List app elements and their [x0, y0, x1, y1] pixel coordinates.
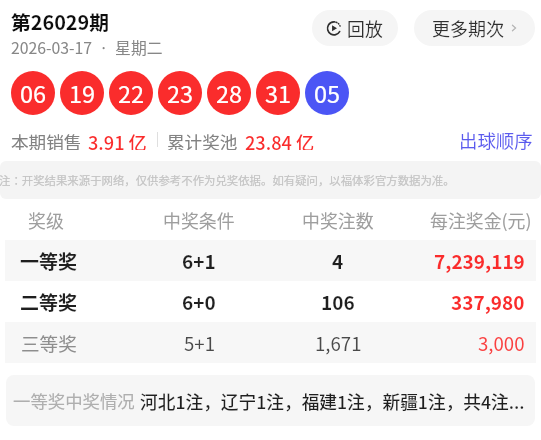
staticText: 7,239,119	[434, 247, 525, 275]
staticText: 奖级	[28, 207, 64, 233]
button[interactable]: 更多期次	[414, 10, 535, 46]
staticText: 每注奖金(元)	[430, 207, 532, 233]
staticText: 06	[20, 76, 47, 110]
staticText: 三等奖	[21, 329, 77, 356]
staticText: 本期销售	[11, 129, 82, 150]
staticText: 河北1注，辽宁1注，福建1注，新疆1注，共4注...	[140, 388, 525, 414]
staticText: 5+1	[184, 329, 215, 356]
staticText: 累计奖池	[167, 129, 238, 150]
staticText: 出球顺序	[459, 127, 533, 154]
staticText: 一等奖中奖情况	[13, 388, 135, 413]
staticText: 回放	[347, 15, 383, 41]
button[interactable]: 一等奖中奖情况	[6, 375, 535, 426]
staticText: 中奖条件	[163, 207, 235, 233]
staticText: 3,000	[478, 329, 525, 356]
button[interactable]: 出球顺序	[451, 121, 541, 160]
staticText: 22	[118, 76, 145, 110]
staticText: 106	[321, 288, 355, 316]
staticText: 中奖注数	[302, 207, 374, 233]
staticText: 6+1	[182, 247, 216, 275]
staticText: 4	[332, 247, 344, 275]
staticText: 28	[216, 76, 243, 110]
staticText: 19	[69, 76, 96, 110]
staticText: 一等奖	[20, 247, 78, 275]
staticText: 23	[167, 76, 194, 110]
staticText: 3.91 亿	[88, 129, 147, 150]
staticText: 31	[265, 76, 292, 110]
staticText: 第26029期	[11, 7, 109, 36]
staticText: 23.84 亿	[245, 129, 315, 150]
staticText: 6+0	[182, 288, 216, 316]
staticText: 05	[314, 76, 341, 110]
staticText: 1,671	[315, 329, 362, 356]
staticText: 2026-03-17 · 星期二	[11, 36, 163, 59]
staticText: 更多期次	[432, 15, 504, 41]
button[interactable]: 回放	[312, 10, 398, 46]
other: 回放	[326, 20, 342, 36]
staticText: 注：开奖结果来源于网络，仅供参考不作为兑奖依据。如有疑问，以福体彩官方数据为准。	[0, 172, 455, 189]
staticText: 337,980	[451, 288, 525, 316]
staticText: 二等奖	[20, 288, 78, 316]
